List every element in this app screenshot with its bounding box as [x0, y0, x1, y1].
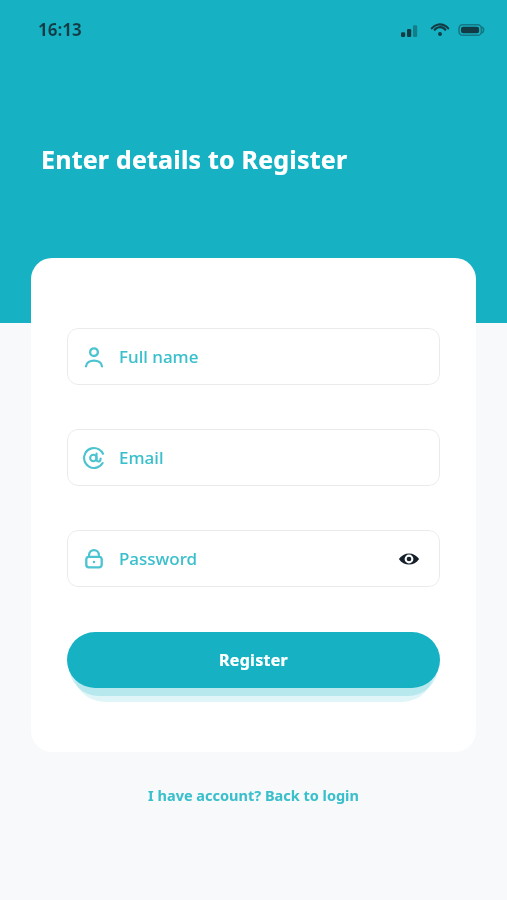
- staticText: I have account? Back to login: [148, 785, 359, 805]
- staticText: Enter details to Register: [41, 142, 348, 176]
- staticText: 16:13: [38, 18, 82, 41]
- staticText: Password: [119, 547, 198, 570]
- button[interactable]: Show password: [394, 544, 424, 574]
- staticText: Email: [119, 446, 164, 469]
- staticText: Register: [219, 649, 289, 671]
- button[interactable]: Register: [67, 632, 440, 688]
- button[interactable]: Full name: [67, 328, 440, 385]
- button[interactable]: I have account? Back to login: [138, 779, 369, 811]
- staticText: Full name: [119, 345, 199, 368]
- button[interactable]: Email: [67, 429, 440, 486]
- button[interactable]: Password: [67, 530, 440, 587]
